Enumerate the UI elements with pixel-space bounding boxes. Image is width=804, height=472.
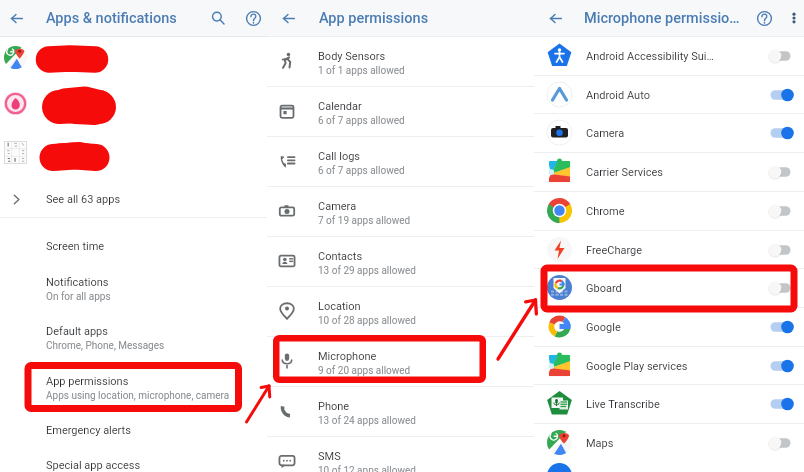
staticText: 13 of 29 apps allowed (318, 265, 416, 277)
staticText: Notifications (46, 276, 109, 289)
staticText: 1 of 1 apps allowed (318, 65, 405, 77)
button[interactable]: Camera (534, 113, 804, 152)
button[interactable]: Location (267, 286, 534, 336)
button[interactable]: Contacts (267, 236, 534, 286)
staticText: Chrome, Phone, Messages (46, 340, 165, 352)
button[interactable]: On (766, 87, 796, 103)
button[interactable]: Sudoku (0, 141, 267, 187)
staticText: 6 of 7 apps allowed (318, 115, 405, 127)
staticText: App permissions (319, 10, 429, 27)
staticText: Location (318, 300, 361, 313)
button[interactable]: Emergency alerts (0, 424, 267, 454)
button[interactable]: On (766, 396, 796, 412)
button[interactable]: Call logs (267, 136, 534, 186)
staticText: Live Transcribe (586, 398, 660, 411)
staticText: 10 of 12 apps allowed (318, 465, 416, 472)
button[interactable]: On (766, 319, 796, 335)
button[interactable]: Special app access (0, 459, 267, 472)
button[interactable]: Live Transcribe (534, 384, 804, 423)
staticText: Body Sensors (318, 50, 386, 63)
button[interactable]: Google (534, 307, 804, 346)
button[interactable]: Off (766, 48, 796, 64)
button[interactable]: Gboard (534, 268, 804, 307)
button[interactable]: See all 63 apps (0, 181, 267, 217)
staticText: Default apps (46, 325, 108, 338)
staticText: Microphone permissio… (584, 10, 740, 27)
button[interactable]: Off (766, 242, 796, 258)
button[interactable]: Screen time (0, 240, 267, 270)
staticText: Google (586, 321, 621, 334)
staticText: Android Accessibility Sui… (586, 50, 714, 63)
staticText: Gboard (586, 282, 622, 295)
staticText: Contacts (318, 250, 363, 263)
button[interactable]: Flo (0, 92, 267, 138)
button[interactable]: Off (766, 435, 796, 451)
button[interactable]: Off (766, 280, 796, 296)
staticText: Apps using location, microphone, camera (46, 390, 230, 402)
staticText: 10 of 28 apps allowed (318, 315, 416, 327)
staticText: Phone (318, 400, 350, 413)
staticText: Screen time (46, 240, 105, 253)
button[interactable]: Phone (267, 386, 534, 436)
staticText: 7 of 19 apps allowed (318, 215, 411, 227)
button[interactable]: Help (239, 4, 267, 32)
button[interactable]: SMS (267, 436, 534, 472)
button[interactable]: Help (750, 4, 778, 32)
staticText: 13 of 24 apps allowed (318, 415, 416, 427)
staticText: 9 of 20 apps allowed (318, 365, 411, 377)
button[interactable]: Off (766, 203, 796, 219)
staticText: 6 of 7 apps allowed (318, 165, 405, 177)
staticText: Apps & notifications (46, 10, 177, 27)
button[interactable]: On (766, 125, 796, 141)
button[interactable]: Search (204, 4, 232, 32)
staticText: Calendar (318, 100, 362, 113)
staticText: Call logs (318, 150, 361, 163)
button[interactable]: App permissions (0, 375, 267, 419)
button[interactable]: On (766, 358, 796, 374)
button[interactable]: Microphone (267, 336, 534, 386)
staticText: Camera (586, 127, 625, 140)
button[interactable]: Maps (0, 46, 267, 92)
button[interactable]: Notifications (0, 276, 267, 320)
button[interactable]: Navigate up (540, 3, 570, 33)
button[interactable]: Maps (534, 423, 804, 462)
staticText: Camera (318, 200, 357, 213)
staticText: Chrome (586, 205, 625, 218)
button[interactable]: Off (766, 164, 796, 180)
button[interactable]: Navigate up (273, 3, 303, 33)
staticText: Maps (586, 437, 614, 450)
staticText: FreeCharge (586, 244, 643, 257)
button[interactable]: Default apps (0, 325, 267, 369)
button[interactable]: More options (782, 6, 804, 30)
staticText: On for all apps (46, 291, 111, 303)
button[interactable]: Navigate up (1, 3, 31, 33)
staticText: SMS (318, 450, 341, 463)
button[interactable]: Carrier Services (534, 152, 804, 191)
staticText: Carrier Services (586, 166, 664, 179)
button[interactable]: Body Sensors (267, 36, 534, 86)
button[interactable]: Camera (267, 186, 534, 236)
button[interactable]: Android Accessibility Sui… (534, 36, 804, 75)
staticText: Google Play services (586, 360, 688, 373)
staticText: See all 63 apps (46, 193, 121, 206)
staticText: App permissions (46, 375, 129, 388)
button[interactable]: Google Play services (534, 346, 804, 385)
staticText: Android Auto (586, 89, 650, 102)
button[interactable]: FreeCharge (534, 230, 804, 269)
staticText: Emergency alerts (46, 424, 131, 437)
button[interactable]: Chrome (534, 191, 804, 230)
button[interactable]: Android Auto (534, 75, 804, 114)
staticText: Microphone (318, 350, 377, 363)
button[interactable]: Calendar (267, 86, 534, 136)
staticText: Special app access (46, 459, 141, 472)
